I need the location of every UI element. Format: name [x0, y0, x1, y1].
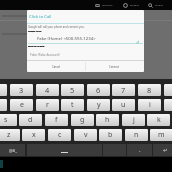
button[interactable]: . [127, 144, 152, 156]
staticText: v [84, 130, 88, 140]
button[interactable]: @#_ [0, 144, 25, 156]
button[interactable]: m [150, 129, 172, 141]
button[interactable]: s [0, 114, 17, 126]
staticText: t [71, 100, 74, 110]
staticText: Fake (Home) <500-555-1234> [37, 35, 96, 41]
staticText: Google will call your phone and connect … [28, 25, 85, 29]
staticText: Fake (Fake Account) [30, 53, 60, 57]
button[interactable]: o [164, 99, 172, 111]
staticText: x [32, 130, 36, 140]
staticText: f [55, 115, 58, 125]
staticText: b [108, 130, 113, 140]
button[interactable]: g [71, 114, 94, 126]
button[interactable]: z [0, 129, 20, 141]
staticText: Connect [109, 65, 120, 69]
staticText: m [158, 130, 165, 140]
button[interactable]: x [22, 129, 45, 141]
staticText: s [4, 115, 8, 125]
button[interactable]: v [74, 129, 97, 141]
button[interactable]: b [99, 129, 122, 141]
button[interactable]: 4 [36, 84, 59, 96]
staticText: c [58, 130, 62, 140]
staticText: 3 [19, 85, 24, 95]
button[interactable]: 9 [164, 84, 172, 96]
staticText: Cancel [52, 65, 61, 69]
staticText: Phone to call with: [28, 45, 45, 47]
staticText: n [134, 130, 139, 140]
button[interactable]: REFRESH [123, 0, 148, 10]
staticText: SEARCH [155, 4, 164, 7]
staticText: z [7, 130, 11, 140]
staticText: COMPOSE [102, 4, 113, 7]
staticText: u [121, 100, 126, 110]
button[interactable]: SEARCH [148, 0, 172, 10]
button[interactable]: y [87, 99, 110, 111]
button[interactable]: k [147, 114, 170, 126]
button[interactable]: t [61, 99, 84, 111]
staticText: d [28, 115, 33, 125]
staticText: 5 [70, 85, 75, 95]
staticText: r [46, 100, 49, 110]
button[interactable]: n [125, 129, 148, 141]
button[interactable]: r [36, 99, 59, 111]
button[interactable]: 5 [61, 84, 84, 96]
staticText: Phone to call with: [28, 45, 45, 47]
button[interactable]: COMPOSE [95, 0, 120, 10]
button[interactable]: e [10, 99, 33, 111]
staticText: Click to Call [29, 14, 52, 20]
button[interactable]: f [45, 114, 68, 126]
staticText: 7 [121, 85, 126, 95]
button[interactable]: 2 [0, 84, 7, 96]
button[interactable]: j [122, 114, 145, 126]
staticText: Phone to call with: [28, 45, 45, 47]
staticText: Number to call [28, 30, 42, 32]
button[interactable]: i [138, 99, 161, 111]
staticText: k [157, 115, 161, 125]
staticText: g [80, 115, 85, 125]
button[interactable]: 7 [112, 84, 135, 96]
button[interactable]: 3 [10, 84, 33, 96]
button[interactable]: w [0, 99, 7, 111]
staticText: h [105, 115, 110, 125]
button[interactable]: d [19, 114, 42, 126]
staticText: 4 [45, 85, 50, 95]
staticText: ↵ [163, 147, 168, 153]
staticText: . [139, 146, 141, 154]
staticText: @#_ [9, 148, 17, 153]
button[interactable]: h [96, 114, 119, 126]
staticText: e [20, 100, 24, 110]
button[interactable]: Fake (Home) <500-555-1234> [28, 34, 143, 44]
staticText: 6 [96, 85, 101, 95]
button[interactable]: Connect [85, 61, 144, 72]
staticText: Number to call [28, 30, 42, 32]
button[interactable] [27, 144, 102, 156]
button[interactable]: c [48, 129, 71, 141]
staticText: j [133, 115, 135, 125]
staticText: i [149, 100, 151, 110]
staticText: REFRESH [130, 4, 140, 7]
staticText: y [97, 100, 101, 110]
button[interactable]: 6 [87, 84, 110, 96]
button[interactable]: ↵ [153, 144, 172, 156]
staticText: Number to call [28, 30, 42, 32]
button[interactable]: Cancel [27, 61, 85, 72]
button[interactable]: u [112, 99, 135, 111]
staticText: 8 [147, 85, 152, 95]
button[interactable]: 8 [138, 84, 161, 96]
